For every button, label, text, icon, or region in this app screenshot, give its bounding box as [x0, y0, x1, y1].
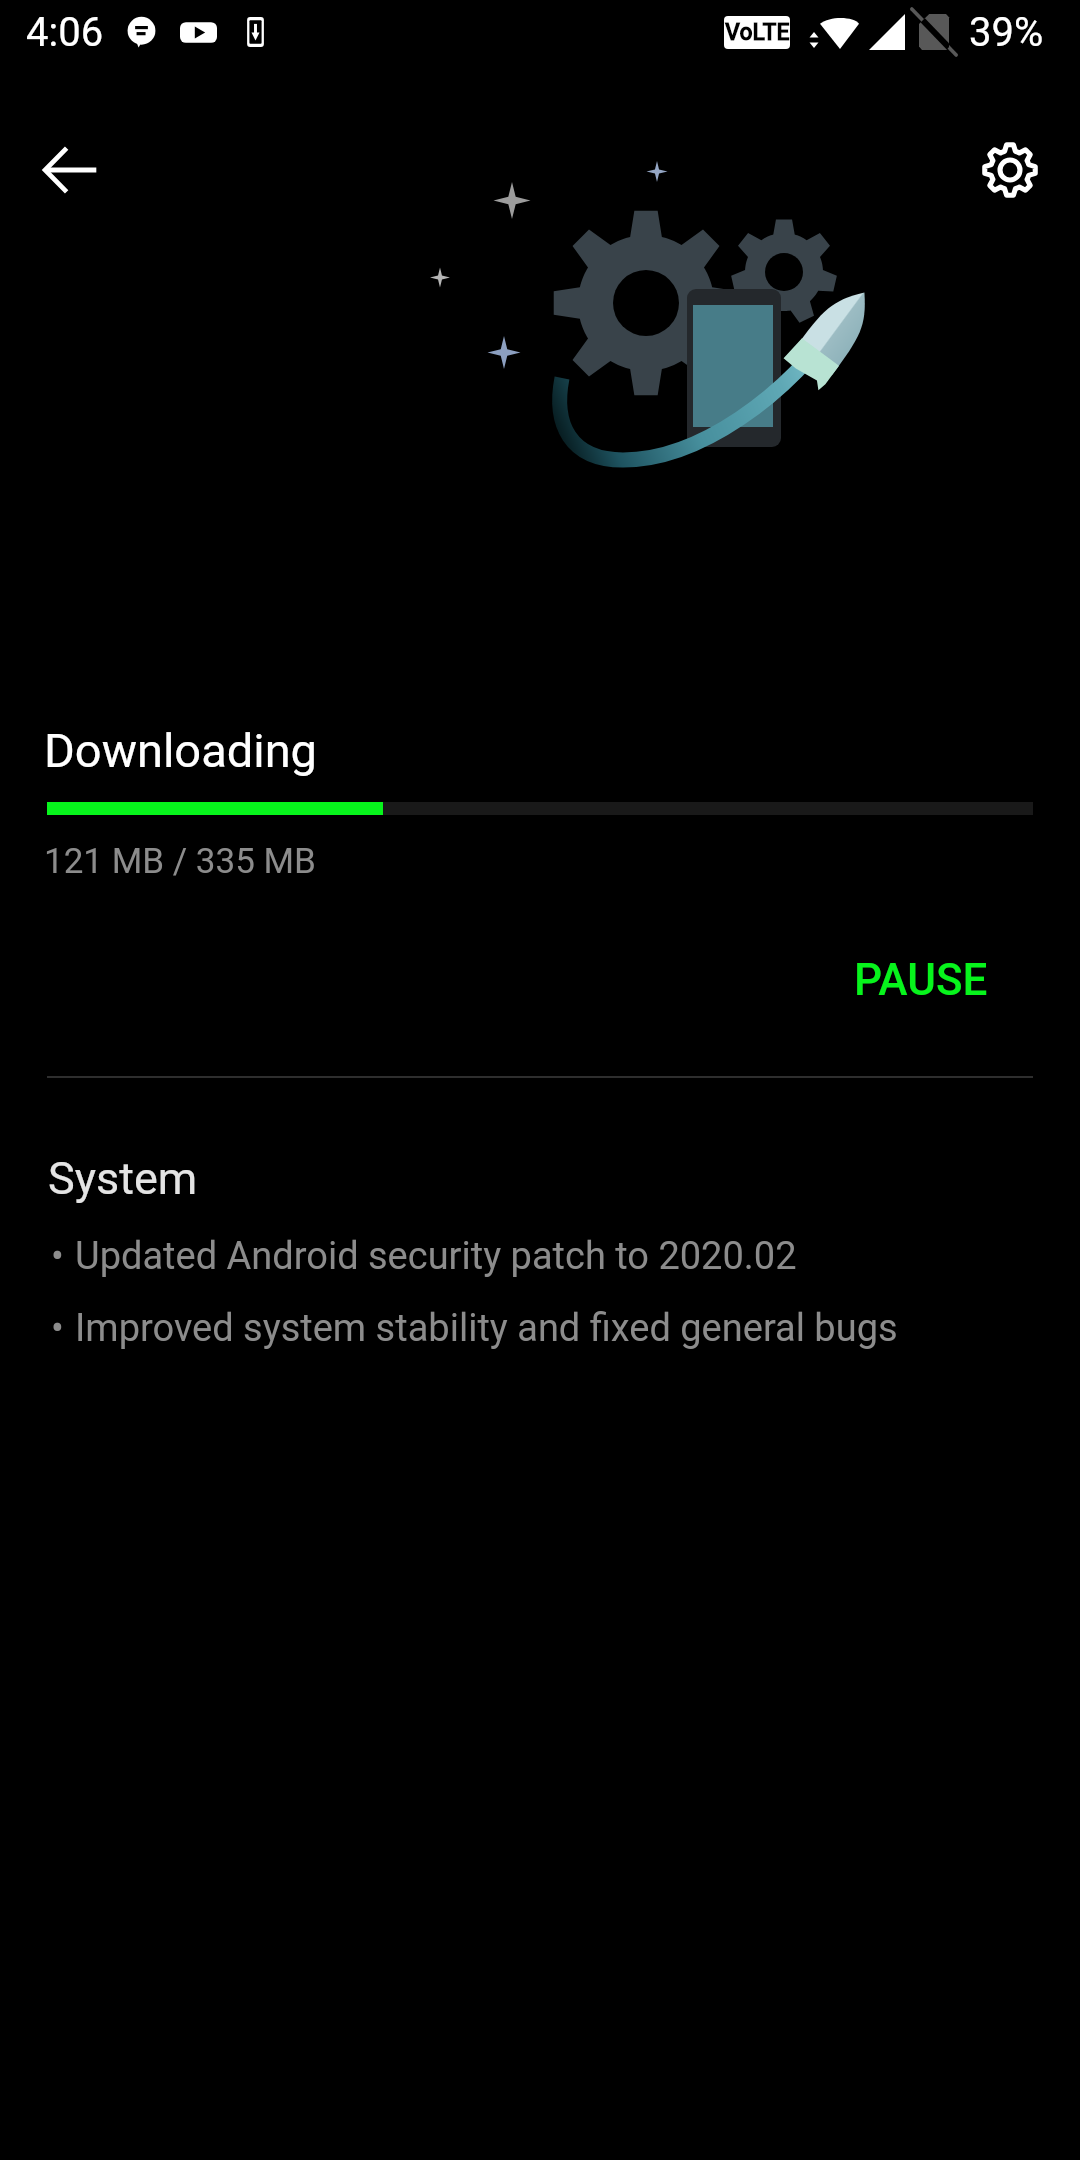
staticText: System: [48, 1152, 198, 1205]
button[interactable]: PAUSE: [814, 918, 1028, 1042]
staticText: PAUSE: [854, 954, 988, 1006]
staticText: 4:06: [26, 9, 104, 56]
staticText: VoLTE: [725, 19, 790, 46]
staticText: 39%: [969, 9, 1044, 56]
staticText: Updated Android security patch to 2020.0…: [75, 1234, 797, 1279]
staticText: •: [51, 1306, 64, 1351]
button[interactable]: Back: [12, 112, 128, 228]
staticText: 121 MB / 335 MB: [44, 841, 316, 882]
staticText: •: [51, 1234, 64, 1279]
button[interactable]: Settings: [952, 112, 1068, 228]
staticText: Downloading: [44, 723, 318, 778]
staticText: Improved system stability and fixed gene…: [75, 1306, 898, 1351]
